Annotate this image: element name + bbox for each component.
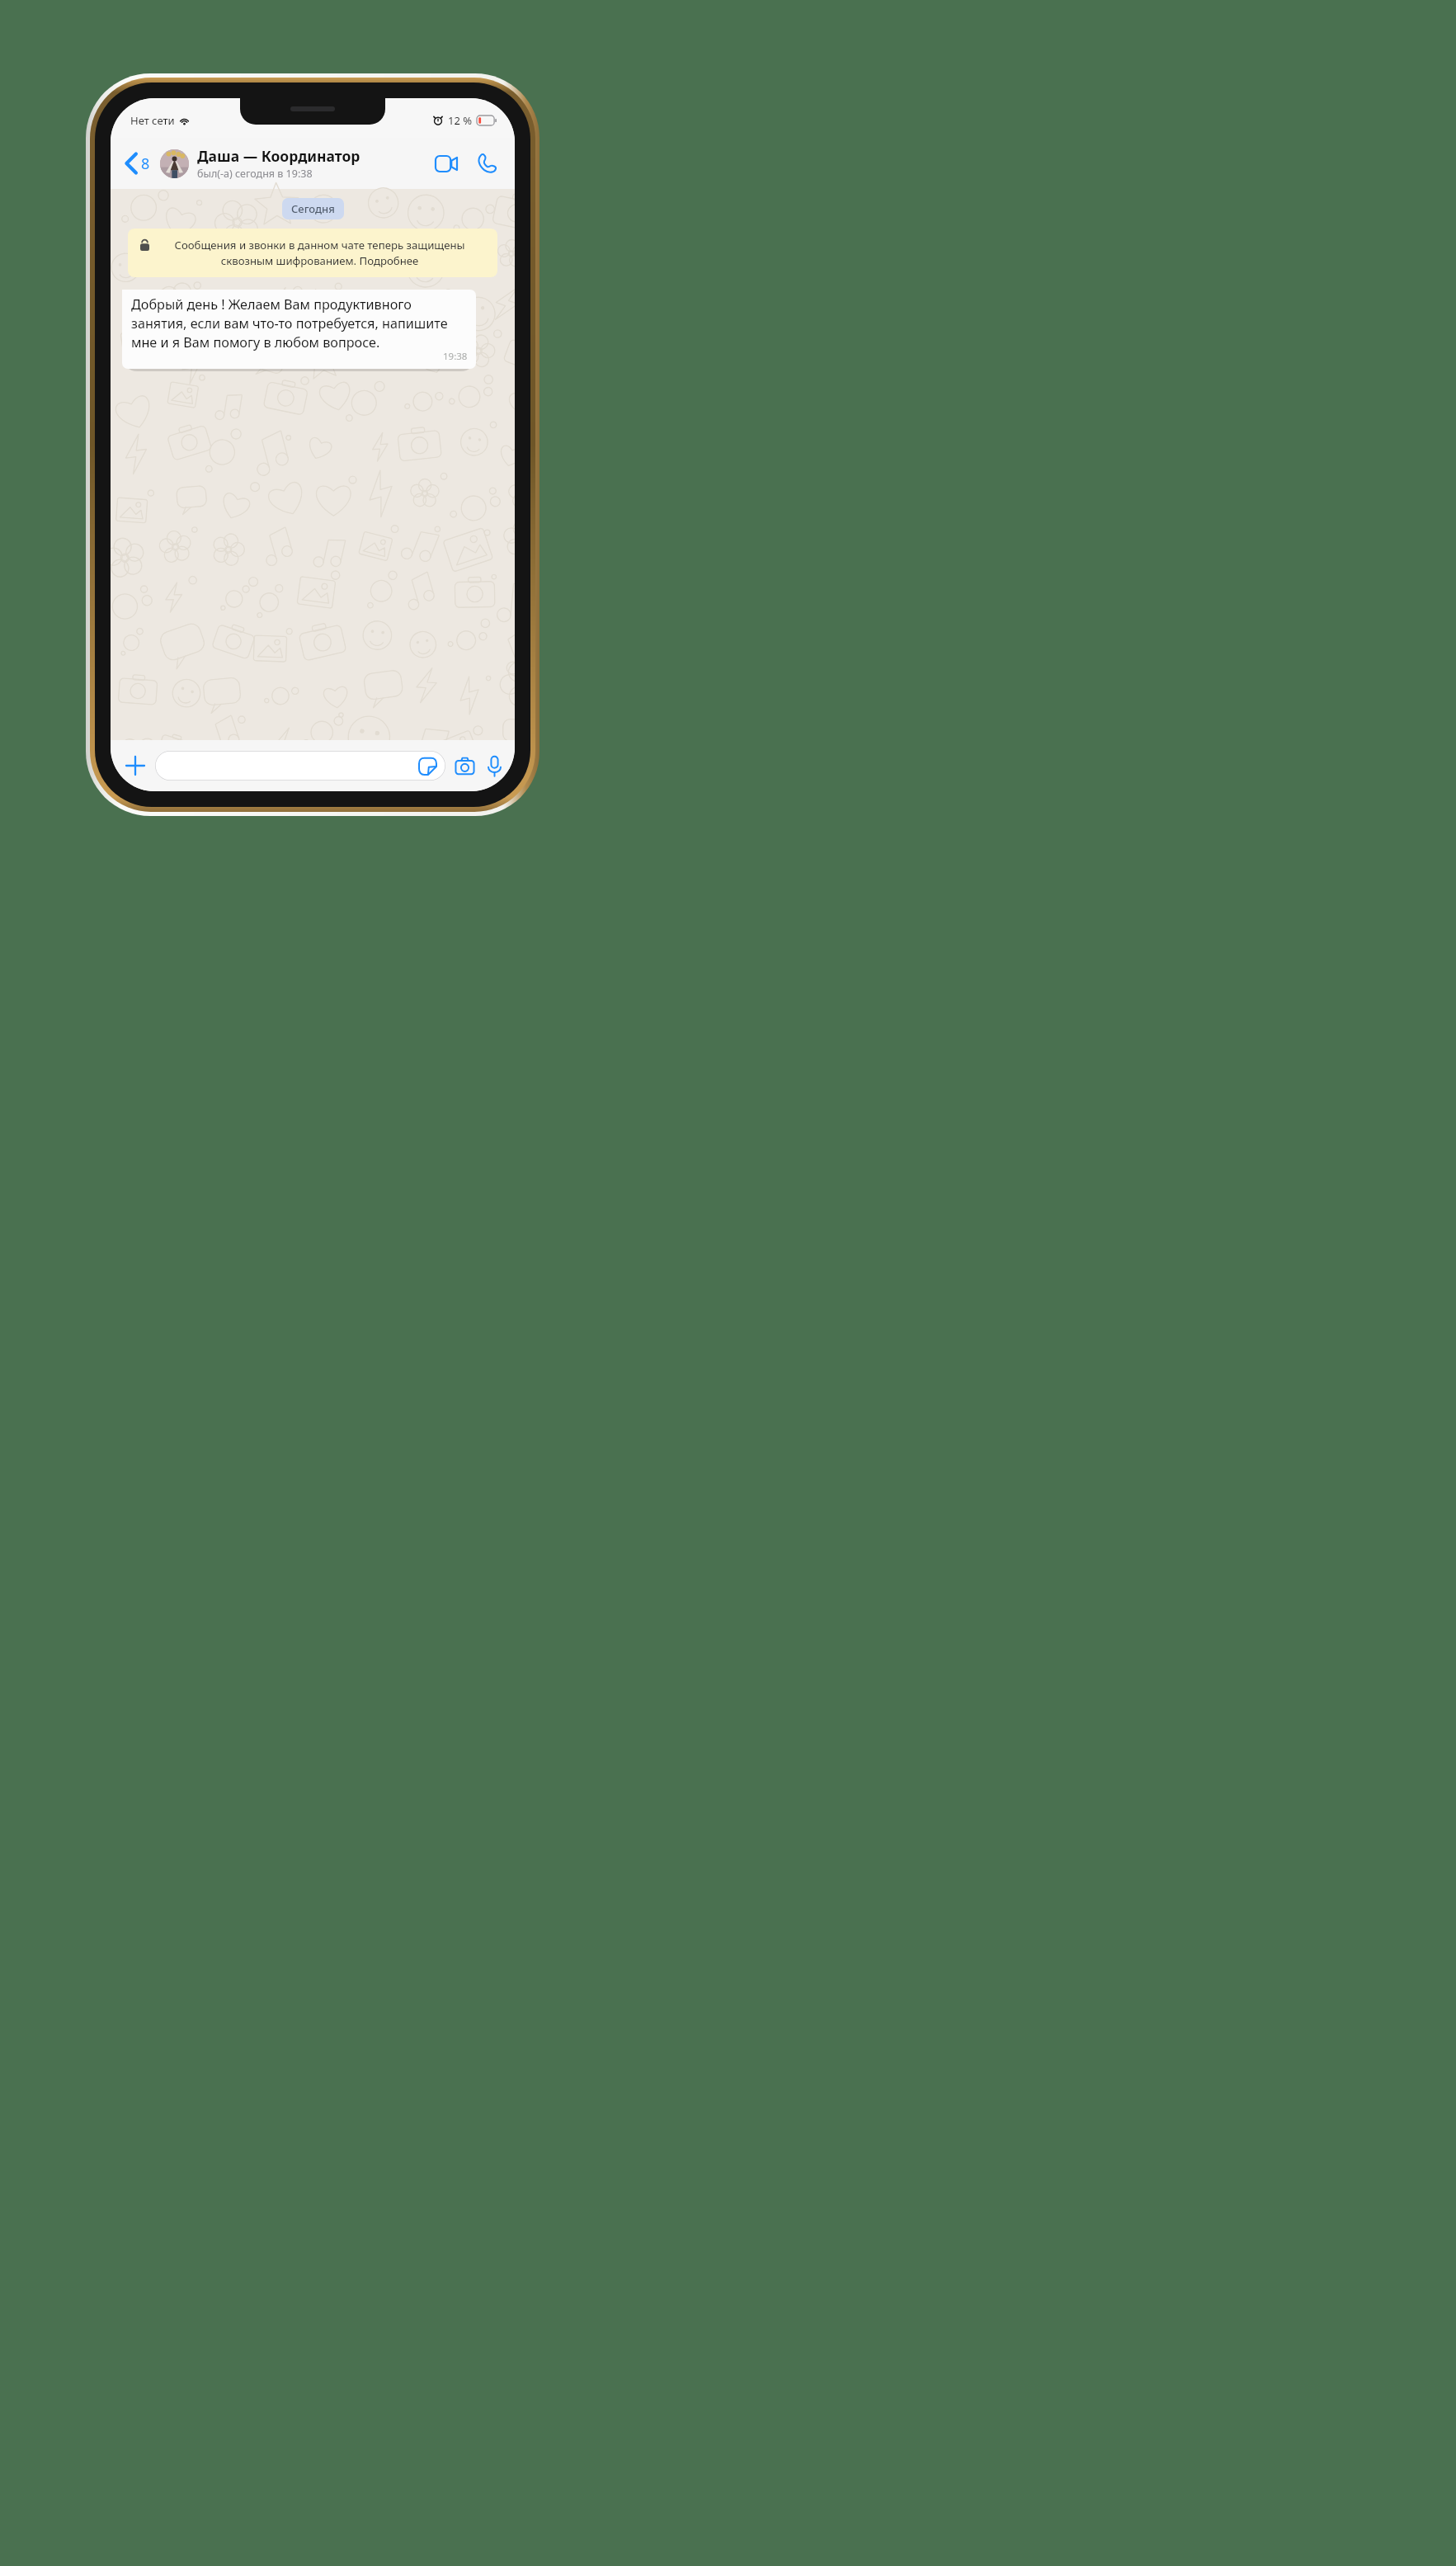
staticText: 8 [141, 153, 150, 174]
button[interactable]: Видеозвонок [429, 149, 464, 178]
staticText: 12 % [448, 113, 473, 128]
staticText: Сообщения и звонки в данном чате теперь … [154, 238, 485, 268]
staticText: 19:38 [443, 350, 468, 363]
staticText: Сегодня [291, 201, 335, 216]
button[interactable]: Сегодня [282, 198, 344, 219]
staticText: был(-а) сегодня в 19:38 [197, 167, 313, 181]
button[interactable]: Звонок [470, 147, 503, 180]
button[interactable]: Сообщения и звонки в данном чате теперь … [128, 229, 497, 277]
button[interactable]: Камера [452, 753, 478, 779]
button[interactable]: Прикрепить [120, 751, 150, 781]
button[interactable]: Фото профиля [160, 149, 189, 178]
button[interactable]: Фото профиля [160, 146, 360, 181]
button[interactable]: Назад [120, 148, 155, 179]
staticText: Нет сети [130, 113, 175, 128]
button[interactable]: Стикеры [417, 755, 439, 777]
staticText: Добрый день ! Желаем Вам продуктивного з… [131, 295, 468, 351]
button[interactable]: Голосовое сообщение [484, 752, 505, 780]
button[interactable]: Добрый день ! Желаем Вам продуктивного з… [122, 290, 476, 369]
staticText: Даша — Координатор [197, 146, 360, 166]
button[interactable]: Стикеры [155, 751, 445, 781]
